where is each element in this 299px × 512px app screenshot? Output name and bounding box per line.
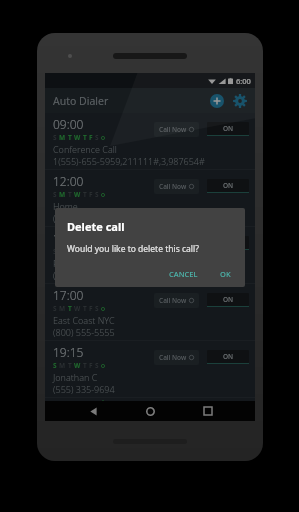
staticText: (555) 222-8888 xyxy=(53,269,115,281)
staticText: W xyxy=(74,133,81,142)
staticText: Call Now xyxy=(159,182,187,191)
button[interactable]: Call Now xyxy=(154,179,199,194)
staticText: 1(555)-655-5959,211111#,3,987654# xyxy=(53,155,205,167)
staticText: ON xyxy=(223,352,234,361)
button[interactable]: 17:00 xyxy=(45,284,255,340)
staticText: (555) 555-1234 xyxy=(53,212,115,224)
button[interactable]: Call Now xyxy=(154,236,199,251)
staticText: S xyxy=(53,304,57,313)
staticText: ON xyxy=(223,295,234,304)
button[interactable]: ON xyxy=(207,350,249,364)
button[interactable]: ON xyxy=(207,122,249,136)
staticText: Call Now xyxy=(159,296,187,305)
staticText: M xyxy=(59,190,66,199)
button[interactable]: Add xyxy=(206,90,227,111)
staticText: T xyxy=(68,247,72,256)
button[interactable]: CANCEL xyxy=(163,266,204,282)
staticText: T xyxy=(68,304,72,313)
staticText: W xyxy=(74,361,81,370)
staticText: W xyxy=(74,247,81,256)
staticText: Auto Dialer xyxy=(53,94,109,108)
staticText: Call Now xyxy=(159,125,187,134)
button[interactable]: Settings xyxy=(229,90,250,111)
staticText: T xyxy=(83,361,87,370)
button[interactable]: 09:00 xyxy=(45,113,255,169)
staticText: S xyxy=(53,361,57,370)
staticText: Delete call xyxy=(67,219,125,234)
staticText: T xyxy=(83,190,87,199)
button[interactable]: ON xyxy=(207,236,249,250)
staticText: T xyxy=(83,247,87,256)
button[interactable]: Call Now xyxy=(154,293,199,308)
staticText: W xyxy=(74,304,81,313)
button[interactable]: ON xyxy=(207,179,249,193)
staticText: 09:00 xyxy=(53,116,84,132)
staticText: Would you like to delete this call? xyxy=(67,243,199,255)
button[interactable]: 12:00 xyxy=(45,170,255,226)
staticText: F xyxy=(89,190,93,199)
staticText: F xyxy=(89,361,93,370)
staticText: Project Sync xyxy=(53,257,103,269)
staticText: M xyxy=(59,304,66,313)
staticText: M xyxy=(59,361,66,370)
staticText: F xyxy=(89,247,93,256)
staticText: 12:00 xyxy=(53,173,84,189)
staticText: S xyxy=(53,190,57,199)
staticText: W xyxy=(74,190,81,199)
button[interactable]: Home xyxy=(140,401,160,421)
staticText: F xyxy=(89,304,93,313)
staticText: 15:30 xyxy=(53,230,84,246)
button[interactable]: OK xyxy=(214,266,237,282)
staticText: S xyxy=(53,133,57,142)
staticText: Call Now xyxy=(159,353,187,362)
staticText: T xyxy=(83,304,87,313)
staticText: F xyxy=(89,133,93,142)
button[interactable]: ON xyxy=(207,293,249,307)
staticText: S xyxy=(95,133,99,142)
staticText: S xyxy=(95,190,99,199)
staticText: S xyxy=(53,247,57,256)
staticText: M xyxy=(59,133,66,142)
staticText: ON xyxy=(223,181,234,190)
staticText: S xyxy=(95,304,99,313)
staticText: (555) 335-9694 xyxy=(53,383,115,395)
button[interactable]: 19:15 xyxy=(45,341,255,397)
staticText: 17:00 xyxy=(53,287,84,303)
staticText: (800) 555-5555 xyxy=(53,326,115,338)
staticText: S xyxy=(95,361,99,370)
staticText: T xyxy=(68,133,72,142)
button[interactable]: Call Now xyxy=(154,350,199,365)
staticText: 6:00 xyxy=(236,76,251,86)
button[interactable]: Call Now xyxy=(154,122,199,137)
staticText: Call Now xyxy=(159,239,187,248)
staticText: Conference Call xyxy=(53,143,117,155)
staticText: ON xyxy=(223,124,234,133)
staticText: OK xyxy=(220,269,231,279)
staticText: CANCEL xyxy=(169,269,198,279)
staticText: Home xyxy=(53,200,78,212)
staticText: T xyxy=(68,190,72,199)
button[interactable]: Recents xyxy=(198,401,218,421)
button[interactable]: Back xyxy=(83,401,103,421)
staticText: East Coast NYC xyxy=(53,314,115,326)
staticText: Jonathan C xyxy=(53,371,98,383)
staticText: 19:15 xyxy=(53,344,84,360)
staticText: S xyxy=(95,247,99,256)
button[interactable]: 15:30 xyxy=(45,227,255,283)
staticText: T xyxy=(68,361,72,370)
staticText: T xyxy=(83,133,87,142)
